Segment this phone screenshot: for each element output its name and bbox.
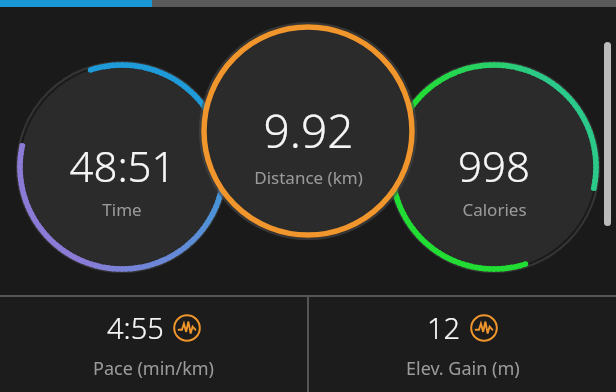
other: Heart rate graph [173, 314, 201, 342]
button[interactable]: 12 [309, 297, 616, 392]
staticText: Calories [462, 198, 527, 221]
staticText: 12 [427, 308, 461, 347]
button[interactable] [0, 0, 616, 296]
staticText: 4:55 [107, 308, 164, 347]
staticText: Time [102, 198, 142, 221]
staticText: 9.92 [263, 99, 354, 162]
staticText: Pace (min/km) [93, 356, 214, 381]
button[interactable]: 4:55 [0, 297, 307, 392]
other: Heart rate graph [470, 314, 498, 342]
staticText: Distance (km) [254, 166, 363, 189]
staticText: 998 [458, 137, 530, 194]
staticText: 48:51 [69, 137, 176, 194]
staticText: Elev. Gain (m) [406, 356, 520, 381]
